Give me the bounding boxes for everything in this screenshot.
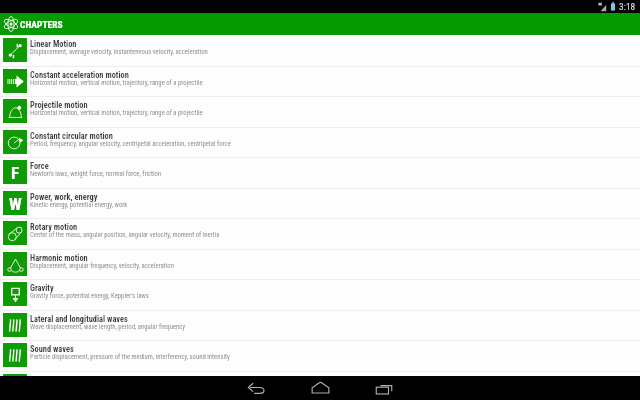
staticText: Wave displacement, wave length, period, …	[30, 323, 186, 331]
staticText: Harmonic motion	[30, 253, 88, 263]
staticText: 3:18	[619, 1, 636, 12]
staticText: Newton's laws, weight force, normal forc…	[30, 170, 162, 178]
button[interactable]: Constant acceleration motion	[0, 66, 640, 97]
button[interactable]: Recent apps	[353, 376, 415, 400]
button[interactable]: Gravity	[0, 279, 640, 310]
button[interactable]: CHAPTERS	[0, 13, 640, 35]
button[interactable]: Harmonic motion	[0, 249, 640, 280]
button[interactable]: Constant circular motion	[0, 127, 640, 158]
staticText: Projectile motion	[30, 100, 88, 110]
button[interactable]: Sound waves	[0, 340, 640, 371]
button[interactable]: W	[0, 188, 640, 219]
staticText: Constant acceleration motion	[30, 70, 129, 80]
button[interactable]: F	[0, 157, 640, 188]
staticText: Displacement, angular frequency, velocit…	[30, 262, 174, 270]
staticText: Force	[30, 161, 49, 171]
staticText: Linear Motion	[30, 39, 77, 49]
staticText: Power, work, energy	[30, 192, 98, 202]
staticText: Center of the mass, angular position, an…	[30, 231, 220, 239]
staticText: Horizontal motion, vertical motion, traj…	[30, 79, 203, 87]
staticText: Particle displacement, pressure of the m…	[30, 353, 230, 361]
staticText: Rotary motion	[30, 222, 78, 232]
staticText: Doppler effect	[30, 375, 78, 385]
button[interactable]: Rotary motion	[0, 218, 640, 249]
button[interactable]: Projectile motion	[0, 96, 640, 127]
staticText: Gravity force, potential energy, Keppler…	[30, 292, 149, 300]
staticText: Period, frequency, angular velocity, cen…	[30, 140, 231, 148]
staticText: Constant circular motion	[30, 131, 113, 141]
staticText: Gravity	[30, 283, 54, 293]
staticText: Sound waves	[30, 344, 74, 354]
button[interactable]: Doppler effect	[0, 371, 640, 400]
staticText: Displacement, average velocity, instante…	[30, 48, 208, 56]
staticText: Kinetic energy, potential energy, work	[30, 201, 128, 209]
button[interactable]: Home	[289, 376, 351, 400]
staticText: Horizontal motion, vertical motion, traj…	[30, 109, 203, 117]
staticText: Lateral and longitudial waves	[30, 314, 128, 324]
button[interactable]: Linear Motion	[0, 35, 640, 66]
staticText: CHAPTERS	[20, 19, 63, 30]
button[interactable]: Back	[225, 376, 287, 400]
button[interactable]: Lateral and longitudial waves	[0, 310, 640, 341]
staticText: W	[9, 194, 22, 214]
staticText: F	[11, 163, 20, 183]
